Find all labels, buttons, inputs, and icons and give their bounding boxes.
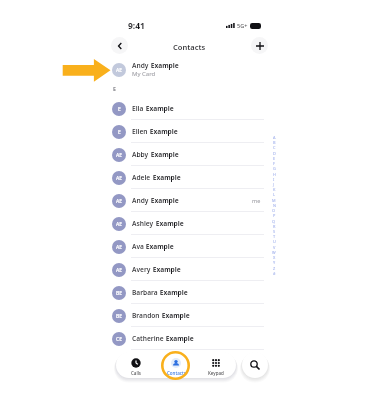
staticText: Ellen [132, 127, 148, 136]
staticText: Example [151, 173, 181, 182]
staticText: P [273, 213, 276, 218]
staticText: Keypad [208, 370, 224, 376]
staticText: A [273, 135, 276, 140]
staticText: Example [151, 265, 181, 274]
staticText: My Card [132, 70, 156, 78]
staticText: Example [160, 311, 190, 320]
staticText: Example [149, 150, 179, 159]
staticText: U [273, 239, 276, 244]
staticText: AE [116, 67, 123, 74]
staticText: Example [158, 288, 188, 297]
staticText: E [118, 129, 121, 136]
staticText: Example [144, 104, 174, 113]
staticText: AE [116, 152, 123, 159]
staticText: Ashley [132, 219, 154, 228]
staticText: D [273, 151, 276, 156]
staticText: 5G+ [237, 22, 248, 29]
staticText: R [273, 224, 276, 229]
staticText: O [272, 208, 276, 213]
staticText: F [273, 161, 276, 166]
staticText: BE [116, 290, 123, 297]
staticText: K [273, 187, 276, 192]
staticText: I [273, 177, 275, 182]
button[interactable]: AE [106, 212, 273, 235]
staticText: Catherine [132, 334, 164, 343]
staticText: G [273, 166, 276, 171]
staticText: N [273, 203, 276, 208]
button[interactable]: Calls [116, 354, 156, 376]
button[interactable]: E [106, 120, 273, 143]
staticText: Example [154, 219, 184, 228]
staticText: Example [149, 196, 179, 205]
button[interactable]: E [106, 97, 273, 120]
staticText: Example [144, 242, 174, 251]
staticText: Barbara [132, 288, 158, 297]
staticText: 9:41 [128, 20, 145, 32]
staticText: Andy [132, 196, 149, 205]
staticText: CE [116, 336, 122, 343]
staticText: Ella [132, 104, 144, 113]
staticText: Example [149, 61, 179, 70]
staticText: BE [116, 313, 123, 320]
button[interactable]: AE [106, 166, 273, 189]
button[interactable]: Search [242, 352, 268, 378]
staticText: # [273, 271, 276, 276]
staticText: Andy [132, 61, 149, 70]
staticText: Ava [132, 242, 144, 251]
staticText: H [273, 172, 276, 177]
staticText: Y [273, 260, 276, 265]
staticText: T [273, 234, 276, 239]
staticText: M [272, 198, 276, 203]
button[interactable]: BE [106, 281, 273, 304]
button[interactable]: AE [106, 258, 273, 281]
staticText: B [273, 140, 276, 145]
staticText: E [273, 156, 276, 161]
staticText: AE [116, 244, 123, 251]
button[interactable]: CE [106, 327, 273, 350]
staticText: Q [272, 219, 276, 224]
staticText: Contacts [173, 42, 206, 52]
button[interactable]: Add contact [251, 37, 268, 54]
button[interactable]: AE [106, 189, 273, 212]
button[interactable]: AE [106, 235, 273, 258]
button[interactable]: AE [106, 57, 273, 82]
staticText: E [118, 106, 121, 113]
staticText: W [272, 250, 276, 255]
staticText: Example [148, 127, 178, 136]
staticText: AE [116, 267, 123, 274]
staticText: Abby [132, 150, 149, 159]
button[interactable]: Keypad [196, 354, 236, 376]
staticText: Brandon [132, 311, 160, 320]
staticText: Adele [132, 173, 151, 182]
staticText: E [113, 85, 116, 92]
staticText: J [273, 182, 275, 187]
button[interactable]: Contacts [156, 354, 196, 376]
staticText: AE [116, 198, 123, 205]
staticText: Avery [132, 265, 151, 274]
button[interactable]: Back [111, 37, 128, 54]
staticText: Z [273, 266, 276, 271]
staticText: AE [116, 175, 123, 182]
button[interactable]: BE [106, 304, 273, 327]
staticText: V [273, 245, 276, 250]
button[interactable]: AE [106, 143, 273, 166]
staticText: L [273, 192, 276, 197]
staticText: Example [164, 334, 194, 343]
staticText: C [273, 145, 276, 150]
staticText: Contacts [167, 370, 186, 376]
staticText: Calls [131, 370, 142, 376]
staticText: S [273, 229, 276, 234]
staticText: me [252, 197, 261, 204]
staticText: X [273, 255, 276, 260]
staticText: AE [116, 221, 123, 228]
